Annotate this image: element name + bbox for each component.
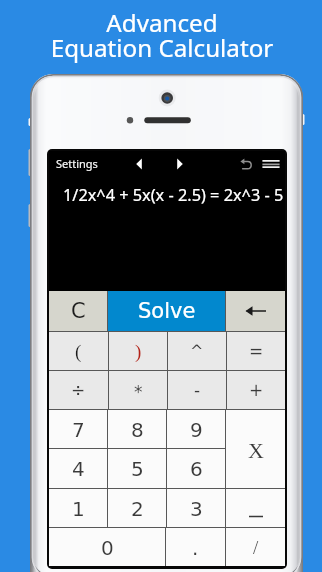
button[interactable]: .	[166, 528, 225, 566]
button[interactable]: X	[226, 410, 285, 488]
button[interactable]: 4	[49, 449, 107, 488]
staticText: -	[194, 380, 201, 400]
staticText: 0	[101, 536, 114, 559]
button[interactable]: Solve	[108, 291, 225, 331]
staticText: *	[134, 382, 143, 402]
staticText: )	[135, 341, 142, 362]
button[interactable]: 7	[49, 410, 107, 448]
button[interactable]: 3	[167, 489, 225, 527]
button[interactable]: /	[226, 528, 285, 566]
button[interactable]: Backspace	[226, 291, 285, 331]
button[interactable]: Next	[170, 154, 190, 174]
staticText: Advanced Equation Calculator	[1, 6, 322, 64]
staticText: 4	[72, 457, 85, 480]
staticText: Solve	[138, 299, 196, 323]
button[interactable]: Settings	[49, 153, 105, 174]
button[interactable]: Previous	[129, 154, 149, 174]
button[interactable]: Menu	[261, 154, 281, 174]
button[interactable]: 5	[108, 449, 166, 488]
button[interactable]: 9	[167, 410, 225, 448]
button[interactable]: 0	[49, 528, 165, 566]
button[interactable]: C	[49, 291, 107, 331]
button[interactable]: ÷	[49, 371, 108, 409]
button[interactable]: =	[227, 332, 285, 370]
staticText: 1/2x^4 + 5x(x - 2.5) = 2x^3 - 5	[63, 184, 284, 206]
button[interactable]: Underscore	[226, 489, 285, 527]
staticText: 3	[190, 497, 203, 520]
staticText: 5	[131, 457, 144, 480]
button[interactable]: +	[227, 371, 285, 409]
staticText: 7	[72, 418, 85, 441]
button[interactable]: (	[49, 332, 108, 370]
staticText: ÷	[71, 380, 86, 400]
staticText: +	[249, 380, 264, 400]
staticText: 8	[131, 418, 144, 441]
staticText: ^	[190, 341, 204, 360]
button[interactable]: 1	[49, 489, 107, 527]
button[interactable]: 6	[167, 449, 225, 488]
button[interactable]: ^	[168, 332, 226, 370]
button[interactable]: 2	[108, 489, 166, 527]
staticText: .	[192, 536, 199, 559]
staticText: =	[249, 341, 264, 361]
staticText: Settings	[56, 156, 98, 171]
staticText: (	[75, 341, 82, 362]
button[interactable]: )	[109, 332, 167, 370]
staticText: 1	[72, 497, 85, 520]
button[interactable]: 8	[108, 410, 166, 448]
staticText: C	[71, 299, 86, 323]
button[interactable]: Undo	[236, 154, 256, 174]
button[interactable]: -	[168, 371, 226, 409]
staticText: X	[248, 438, 264, 462]
staticText: 6	[190, 457, 203, 480]
button[interactable]: *	[109, 371, 167, 409]
staticText: 2	[131, 497, 144, 520]
staticText: 9	[190, 418, 203, 441]
staticText: /	[253, 537, 259, 558]
